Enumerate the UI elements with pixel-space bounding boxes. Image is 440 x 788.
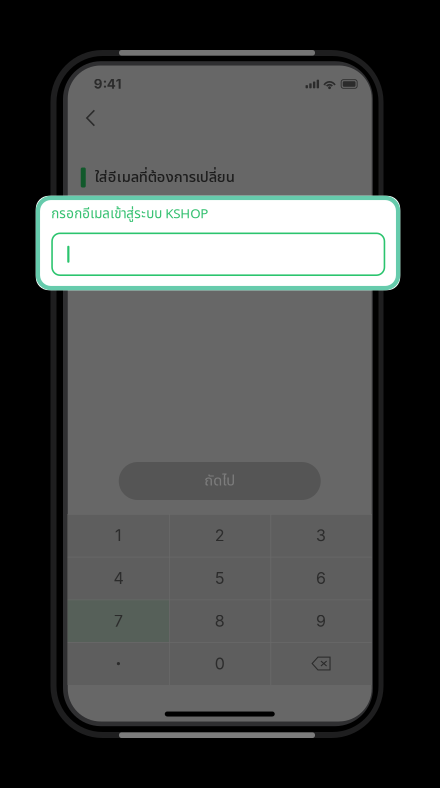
staticText: 5: [215, 568, 225, 588]
staticText: 7: [114, 611, 123, 631]
staticText: กรอกอีเมลเข้าสู่ระบบ KSHOP: [51, 204, 208, 224]
staticText: 4: [113, 568, 123, 588]
staticText: 0: [215, 654, 225, 673]
staticText: 3: [316, 526, 326, 545]
button[interactable]: 0: [169, 642, 270, 685]
staticText: ใส่อีเมลที่ต้องการเปลี่ยน: [95, 166, 235, 189]
staticText: 2: [215, 526, 225, 545]
staticText: 1: [115, 526, 122, 545]
button[interactable]: ถัดไป: [119, 462, 321, 500]
staticText: 9: [316, 611, 326, 631]
button[interactable]: 1: [68, 514, 169, 557]
button[interactable]: Delete: [270, 642, 372, 685]
staticText: 9:41: [94, 76, 122, 92]
button[interactable]: 7: [68, 599, 169, 642]
button[interactable]: 8: [169, 599, 270, 642]
button[interactable]: 4: [68, 557, 169, 600]
button[interactable]: 5: [169, 557, 270, 600]
button[interactable]: 6: [270, 557, 372, 600]
staticText: 8: [215, 611, 225, 631]
staticText: ถัดไป: [204, 470, 235, 492]
button[interactable]: 3: [270, 514, 372, 557]
button[interactable]: 2: [169, 514, 270, 557]
button[interactable]: 9: [270, 599, 372, 642]
button[interactable]: Back: [72, 98, 110, 138]
staticText: 6: [316, 568, 326, 588]
